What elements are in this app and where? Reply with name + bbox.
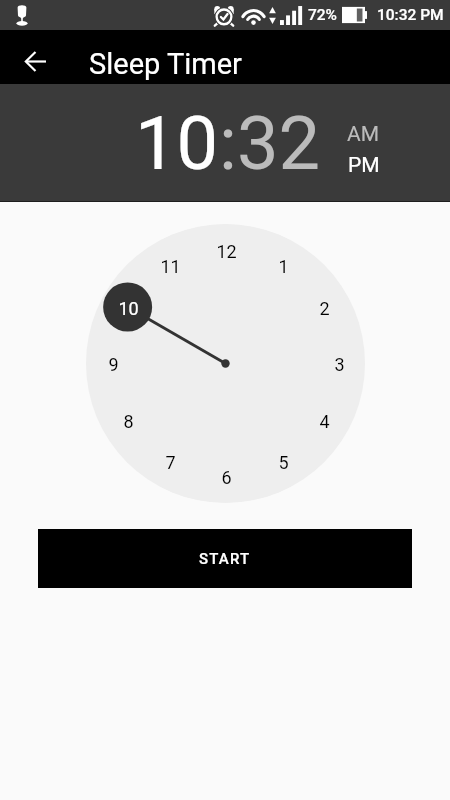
button[interactable]: 8 xyxy=(106,399,150,443)
staticText: 72% xyxy=(308,6,338,24)
staticText: 10:32 PM xyxy=(377,6,444,24)
staticText: 6 xyxy=(221,467,232,488)
staticText: : xyxy=(219,100,237,187)
button[interactable]: 4 xyxy=(302,399,346,443)
button[interactable]: AM xyxy=(347,122,380,147)
staticText: 11 xyxy=(160,256,181,277)
button[interactable]: 10 xyxy=(106,286,150,330)
staticText: 7 xyxy=(165,452,176,473)
button[interactable]: 11 xyxy=(148,244,192,288)
staticText: Sleep Timer xyxy=(89,47,242,81)
staticText: 9 xyxy=(108,354,119,375)
staticText: 1 xyxy=(278,256,289,277)
button[interactable]: 2 xyxy=(302,286,346,330)
staticText: START xyxy=(199,550,251,568)
button[interactable]: Back xyxy=(13,39,57,83)
staticText: 8 xyxy=(123,411,134,432)
button[interactable]: 9 xyxy=(91,342,135,386)
button[interactable]: 1 xyxy=(261,244,305,288)
staticText: 3 xyxy=(334,354,345,375)
staticText: 2 xyxy=(319,298,330,319)
staticText: 5 xyxy=(278,452,289,473)
button[interactable]: 3 xyxy=(317,342,361,386)
button[interactable]: PM xyxy=(348,153,380,178)
button[interactable]: 7 xyxy=(148,440,192,484)
button[interactable]: 12 xyxy=(204,229,248,273)
button[interactable]: 10 xyxy=(135,100,219,187)
button[interactable]: 6 xyxy=(204,455,248,499)
staticText: 4 xyxy=(319,411,330,432)
staticText: 12 xyxy=(216,241,237,262)
staticText: 10 xyxy=(118,298,139,319)
button[interactable]: START xyxy=(38,529,412,588)
button[interactable]: 5 xyxy=(261,440,305,484)
button[interactable]: 32 xyxy=(237,100,321,187)
